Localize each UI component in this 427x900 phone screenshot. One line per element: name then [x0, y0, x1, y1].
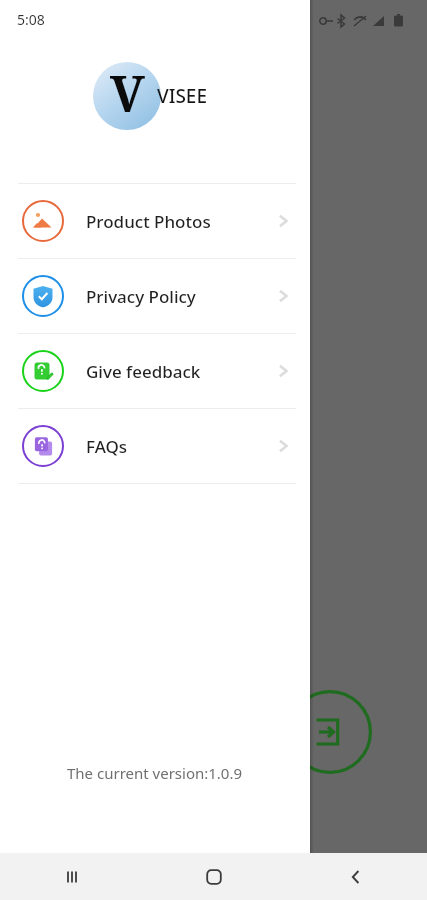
button[interactable]: Product Photos [0, 184, 310, 258]
button[interactable]: Home [143, 853, 285, 900]
staticText: Give feedback [86, 360, 201, 383]
staticText: VISEE [157, 83, 208, 109]
staticText: The current version:1.0.9 [67, 763, 243, 783]
button[interactable]: Recent apps [0, 853, 143, 900]
staticText: Product Photos [86, 210, 211, 233]
button[interactable]: FAQs [0, 409, 310, 483]
button[interactable]: Back [285, 853, 427, 900]
other: Login [288, 690, 372, 774]
staticText: V [110, 59, 145, 127]
button[interactable]: Give feedback [0, 334, 310, 408]
button[interactable]: Privacy Policy [0, 259, 310, 333]
staticText: Privacy Policy [86, 285, 196, 308]
staticText: 5:08 [17, 10, 45, 29]
staticText: FAQs [86, 435, 128, 458]
